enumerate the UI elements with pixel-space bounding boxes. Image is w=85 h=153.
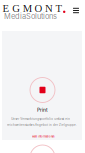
staticText: MediaSolutions [4,12,57,21]
staticText: Print [37,107,48,113]
button[interactable]: Mehr Informationen [32,135,54,138]
staticText: EGMONT [3,2,63,14]
staticText: Mehr Informationen [32,135,54,138]
staticText: Unser Vermarktungsportfolio umfasst ein [11,117,70,121]
button[interactable]: Menu [70,5,81,16]
staticText: reichweitenstarkes Angebot in der Zielgr… [7,123,77,127]
